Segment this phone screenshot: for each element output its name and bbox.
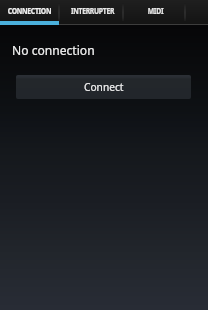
button[interactable]: Connect: [16, 75, 191, 99]
button[interactable]: CONNECTION: [0, 0, 59, 25]
staticText: MIDI: [147, 5, 163, 16]
button[interactable]: MIDI: [124, 0, 186, 25]
button[interactable]: SCOPE: [196, 0, 208, 25]
staticText: No connection: [12, 42, 95, 58]
button[interactable]: INTERRUPTER: [61, 0, 124, 25]
staticText: CONNECTION: [8, 5, 51, 16]
staticText: INTERRUPTER: [71, 5, 114, 16]
staticText: Connect: [84, 80, 124, 94]
